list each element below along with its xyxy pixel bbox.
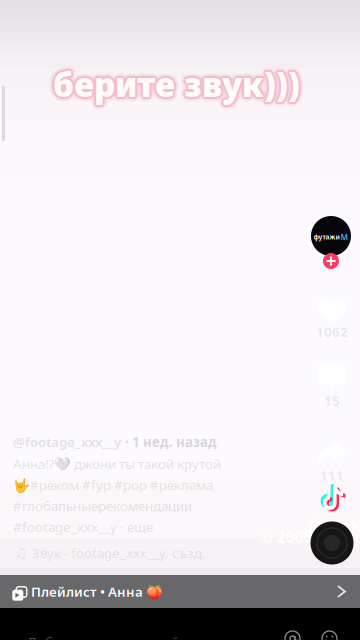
staticText: · 1 нед. назад xyxy=(125,433,216,451)
staticText: 111 xyxy=(320,466,344,484)
staticText: берите звук))) xyxy=(53,66,300,111)
staticText: берите звук))) xyxy=(56,65,303,109)
button[interactable]: Creator profile xyxy=(311,216,351,256)
staticText: M xyxy=(340,232,348,242)
staticText: берите звук))) xyxy=(53,58,300,102)
button[interactable]: Share, 111 xyxy=(306,441,358,481)
staticText: берите звук))) xyxy=(53,60,300,104)
button[interactable]: Comments, 15 xyxy=(306,363,358,406)
staticText: Добавить комментарий... xyxy=(27,633,191,640)
staticText: берите звук))) xyxy=(51,63,298,108)
staticText: берите звук))) xyxy=(51,62,298,106)
staticText: Звук - footage_xxx__y. създ. xyxy=(32,544,206,562)
staticText: #глобальныерекомендации xyxy=(13,497,192,515)
staticText: @footage_xxx__y xyxy=(13,433,121,451)
staticText: TikTok xyxy=(305,514,360,537)
staticText: Анна⁉🤍 джони ты такой крутой xyxy=(13,455,221,473)
staticText: футажи xyxy=(313,233,339,241)
staticText: #footage_xxx__y · еще xyxy=(13,518,153,536)
staticText: берите звук))) xyxy=(54,60,301,105)
staticText: берите звук))) xyxy=(50,65,297,109)
staticText: берите звук))) xyxy=(53,62,300,106)
staticText: берите звук))) xyxy=(55,62,302,106)
staticText: берите звук))) xyxy=(53,64,300,108)
button[interactable]: Плейлист • Анна 🍑 xyxy=(0,575,360,608)
staticText: 15 xyxy=(324,392,340,409)
staticText: 1062 xyxy=(316,323,348,340)
staticText: берите звук))) xyxy=(49,62,296,106)
button[interactable]: Add comment xyxy=(0,608,360,640)
button[interactable]: Like, 1062 xyxy=(306,296,358,337)
staticText: 🤟#реком #fyp #рор #реклама xyxy=(13,476,213,494)
button[interactable]: Sound xyxy=(310,521,353,564)
staticText: берите звук))) xyxy=(50,59,297,103)
staticText: ♫ xyxy=(14,544,27,561)
staticText: Плейлист • Анна 🍑 xyxy=(31,583,163,600)
staticText: © 2008makapeha xyxy=(259,526,360,547)
staticText: берите звук))) xyxy=(56,59,303,103)
staticText: берите звук))) xyxy=(51,60,298,105)
button[interactable]: Follow xyxy=(320,250,341,271)
staticText: берите звук))) xyxy=(57,62,304,106)
staticText: берите звук))) xyxy=(54,63,301,108)
